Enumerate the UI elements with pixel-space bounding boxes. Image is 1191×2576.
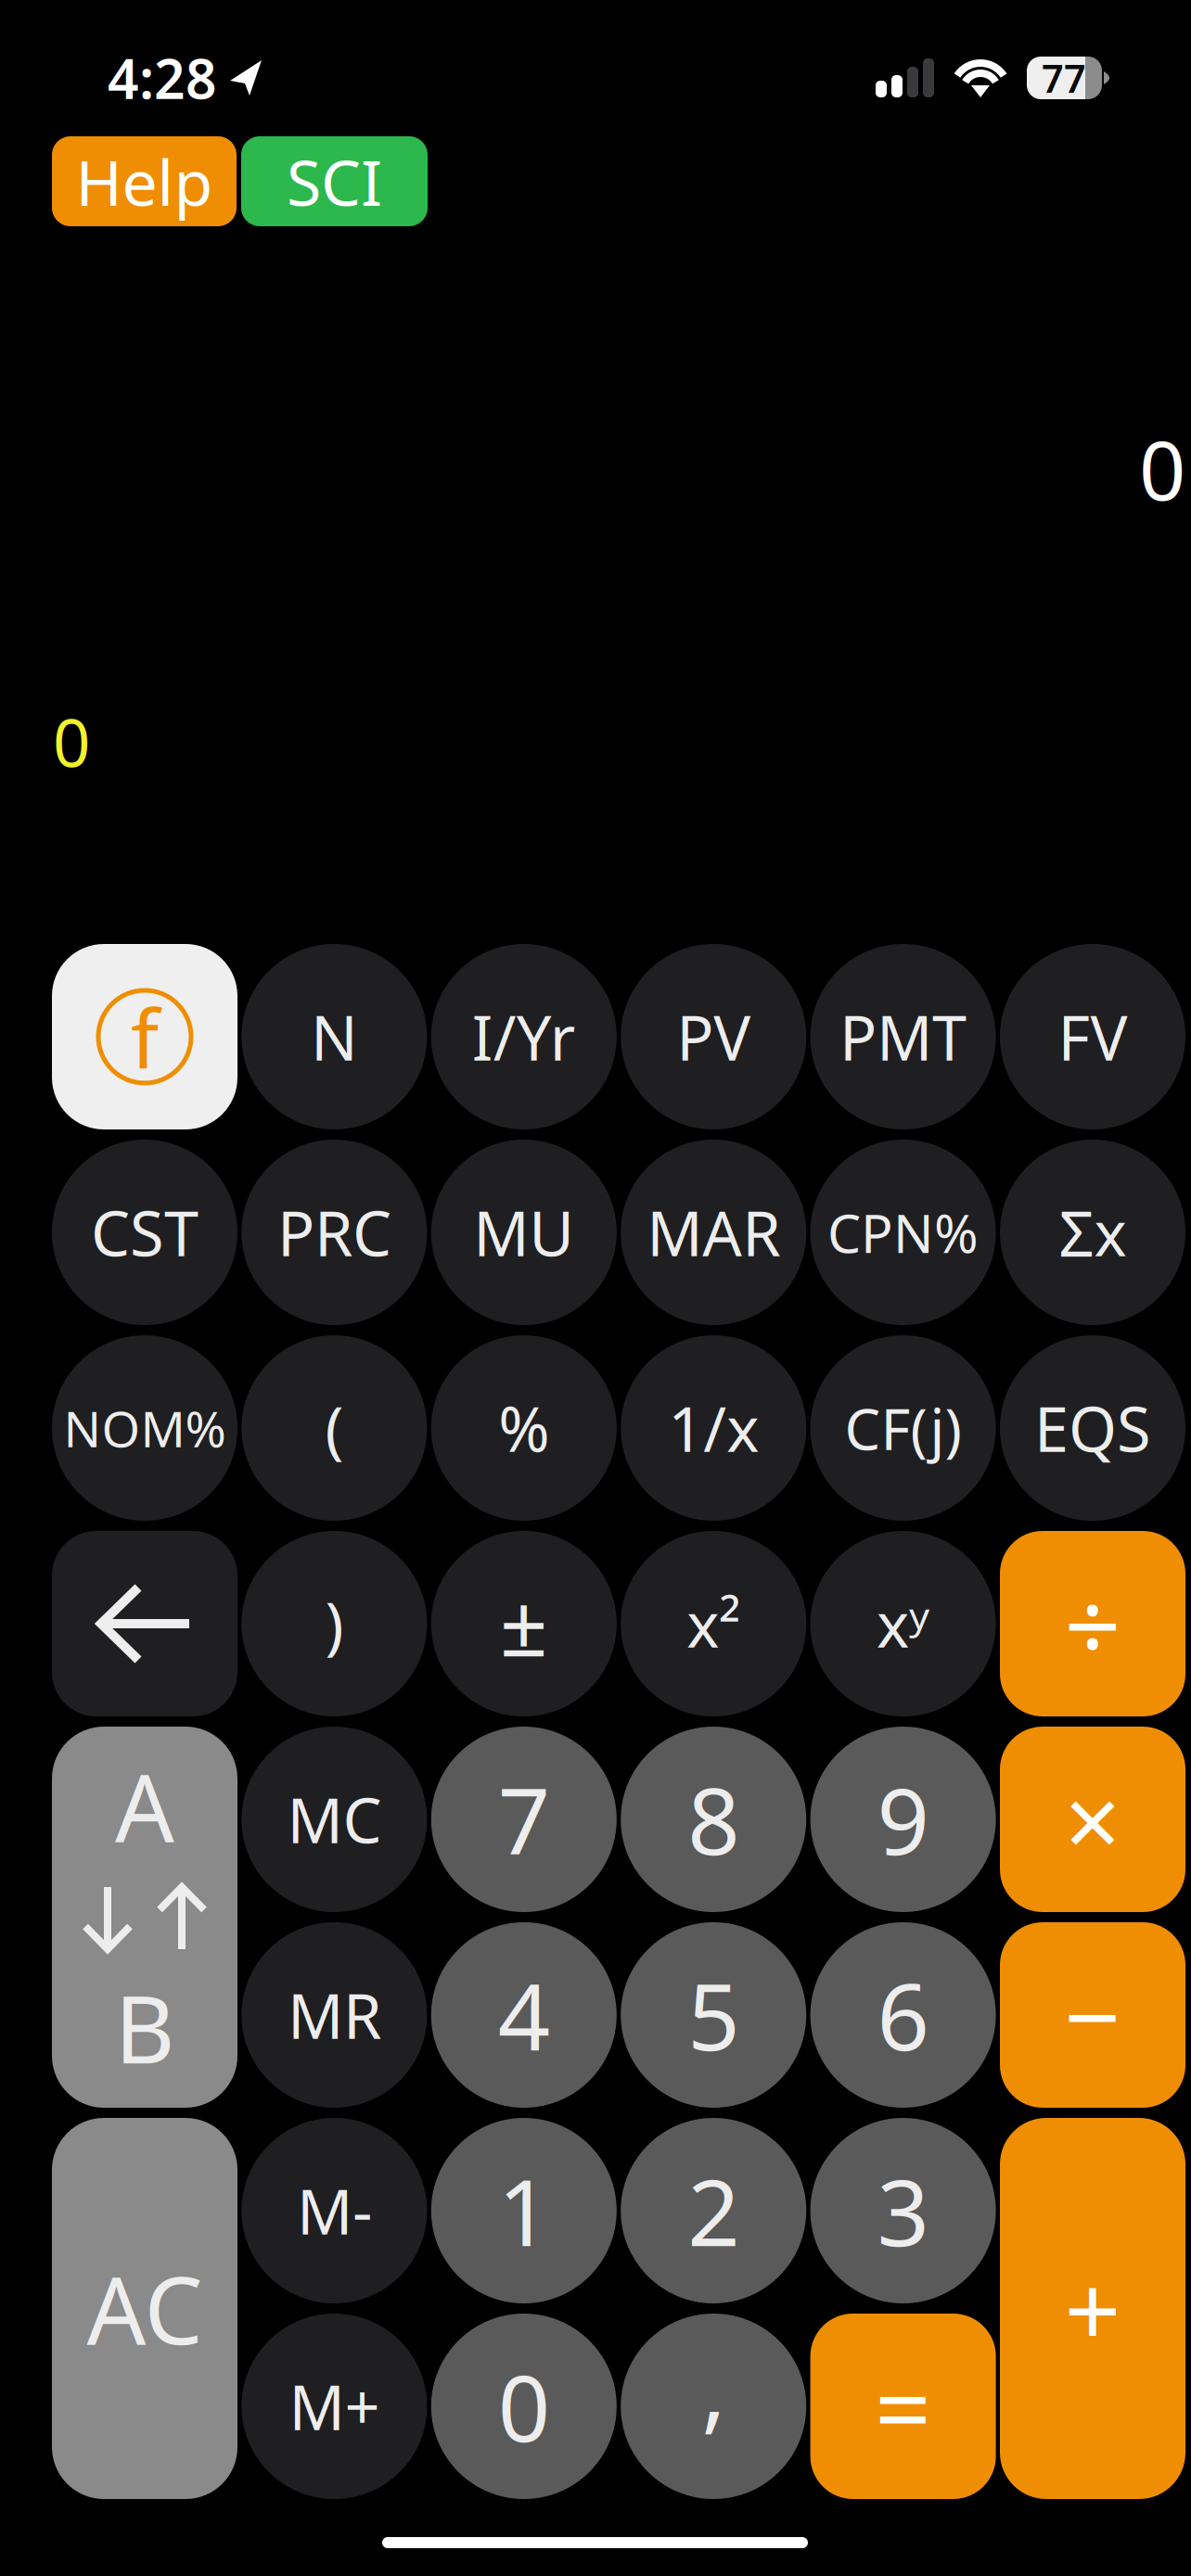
staticText: × xyxy=(1064,1754,1121,1885)
staticText: 5 xyxy=(688,1954,739,2076)
staticText: 1 xyxy=(498,2150,550,2271)
button[interactable]: FV xyxy=(1000,944,1185,1129)
button[interactable]: MAR xyxy=(621,1140,806,1325)
button[interactable]: MR xyxy=(242,1922,427,2108)
button[interactable]: I/Yr xyxy=(431,944,617,1129)
button[interactable]: ± xyxy=(431,1531,617,1716)
staticText: ÷ xyxy=(1064,1558,1121,1689)
button[interactable]: % xyxy=(431,1335,617,1521)
button[interactable]: All clear xyxy=(52,2118,237,2499)
button[interactable]: xʸ xyxy=(810,1531,996,1716)
staticText: 0 xyxy=(53,698,90,785)
staticText: FV xyxy=(1058,996,1127,1078)
button[interactable]: x² xyxy=(621,1531,806,1716)
button[interactable]: Plus xyxy=(1000,2118,1185,2499)
staticText: 0 xyxy=(498,2346,550,2467)
staticText: Σx xyxy=(1059,1191,1127,1273)
staticText: SCI xyxy=(287,139,382,223)
staticText: x² xyxy=(687,1583,740,1665)
button[interactable]: 8 xyxy=(621,1727,806,1912)
staticText: MU xyxy=(473,1191,574,1273)
button[interactable]: SCI xyxy=(241,136,428,226)
button[interactable]: MU xyxy=(431,1140,617,1325)
staticText: I/Yr xyxy=(472,996,576,1078)
button[interactable]: , xyxy=(621,2314,806,2499)
staticText: f xyxy=(131,983,159,1091)
button[interactable]: Function shift xyxy=(52,944,237,1129)
button[interactable]: 7 xyxy=(431,1727,617,1912)
staticText: CPN% xyxy=(827,1197,979,1268)
button[interactable]: ) xyxy=(242,1531,427,1716)
staticText: 2 xyxy=(688,2150,739,2271)
staticText: PRC xyxy=(277,1191,391,1273)
button[interactable]: PRC xyxy=(242,1140,427,1325)
staticText: Help xyxy=(76,139,213,223)
staticText: NOM% xyxy=(64,1395,226,1461)
staticText: B xyxy=(115,1966,175,2089)
button[interactable]: Swap A and B xyxy=(52,1727,237,2108)
button[interactable]: 0 xyxy=(431,2314,617,2499)
staticText: 1/x xyxy=(668,1387,759,1469)
staticText: 6 xyxy=(877,1954,929,2076)
staticText: − xyxy=(1064,1949,1121,2081)
button[interactable]: 6 xyxy=(810,1922,996,2108)
staticText: 4:28 xyxy=(108,42,217,114)
button[interactable]: NOM% xyxy=(52,1335,237,1521)
button[interactable]: EQS xyxy=(1000,1335,1185,1521)
button[interactable]: PV xyxy=(621,944,806,1129)
staticText: 0 xyxy=(1139,414,1185,523)
button[interactable]: 1/x xyxy=(621,1335,806,1521)
staticText: % xyxy=(498,1387,549,1469)
staticText: MAR xyxy=(647,1191,780,1273)
staticText: CST xyxy=(91,1191,198,1273)
staticText: 9 xyxy=(877,1759,929,1880)
staticText: ( xyxy=(325,1387,344,1469)
button[interactable]: M- xyxy=(242,2118,427,2303)
staticText: ± xyxy=(500,1568,548,1680)
staticText: 3 xyxy=(877,2150,929,2271)
button[interactable]: 1 xyxy=(431,2118,617,2303)
staticText: A xyxy=(115,1744,174,1867)
button[interactable]: Multiply xyxy=(1000,1727,1185,1912)
button[interactable]: Divide xyxy=(1000,1531,1185,1716)
staticText: 8 xyxy=(688,1759,739,1880)
staticText: , xyxy=(701,2326,726,2448)
button[interactable]: MC xyxy=(242,1727,427,1912)
button[interactable]: 2 xyxy=(621,2118,806,2303)
staticText: 4 xyxy=(498,1954,550,2076)
button[interactable]: CPN% xyxy=(810,1140,996,1325)
button[interactable]: 4 xyxy=(431,1922,617,2108)
button[interactable]: Backspace xyxy=(52,1531,237,1716)
button[interactable]: ( xyxy=(242,1335,427,1521)
button[interactable]: CST xyxy=(52,1140,237,1325)
button[interactable]: N xyxy=(242,944,427,1129)
staticText: AC xyxy=(87,2247,203,2370)
button[interactable]: 9 xyxy=(810,1727,996,1912)
button[interactable]: 5 xyxy=(621,1922,806,2108)
staticText: + xyxy=(1064,2243,1121,2374)
staticText: M+ xyxy=(289,2365,380,2447)
staticText: PV xyxy=(676,996,751,1078)
button[interactable]: Equals xyxy=(810,2314,996,2499)
staticText: ) xyxy=(325,1583,344,1665)
staticText: CF(j) xyxy=(845,1390,962,1466)
staticText: 7 xyxy=(498,1759,550,1880)
button[interactable]: Help xyxy=(52,136,237,226)
button[interactable]: 3 xyxy=(810,2118,996,2303)
button[interactable]: PMT xyxy=(810,944,996,1129)
staticText: M- xyxy=(297,2170,372,2252)
button[interactable]: CF(j) xyxy=(810,1335,996,1521)
staticText: xʸ xyxy=(877,1583,930,1665)
staticText: = xyxy=(875,2341,931,2472)
button[interactable]: Minus xyxy=(1000,1922,1185,2108)
staticText: 77 xyxy=(1042,52,1086,103)
staticText: PMT xyxy=(840,996,967,1078)
button[interactable]: M+ xyxy=(242,2314,427,2499)
button[interactable]: Σx xyxy=(1000,1140,1185,1325)
staticText: MC xyxy=(287,1778,382,1860)
staticText: EQS xyxy=(1034,1387,1151,1469)
staticText: MR xyxy=(287,1974,381,2056)
staticText: N xyxy=(311,996,358,1078)
